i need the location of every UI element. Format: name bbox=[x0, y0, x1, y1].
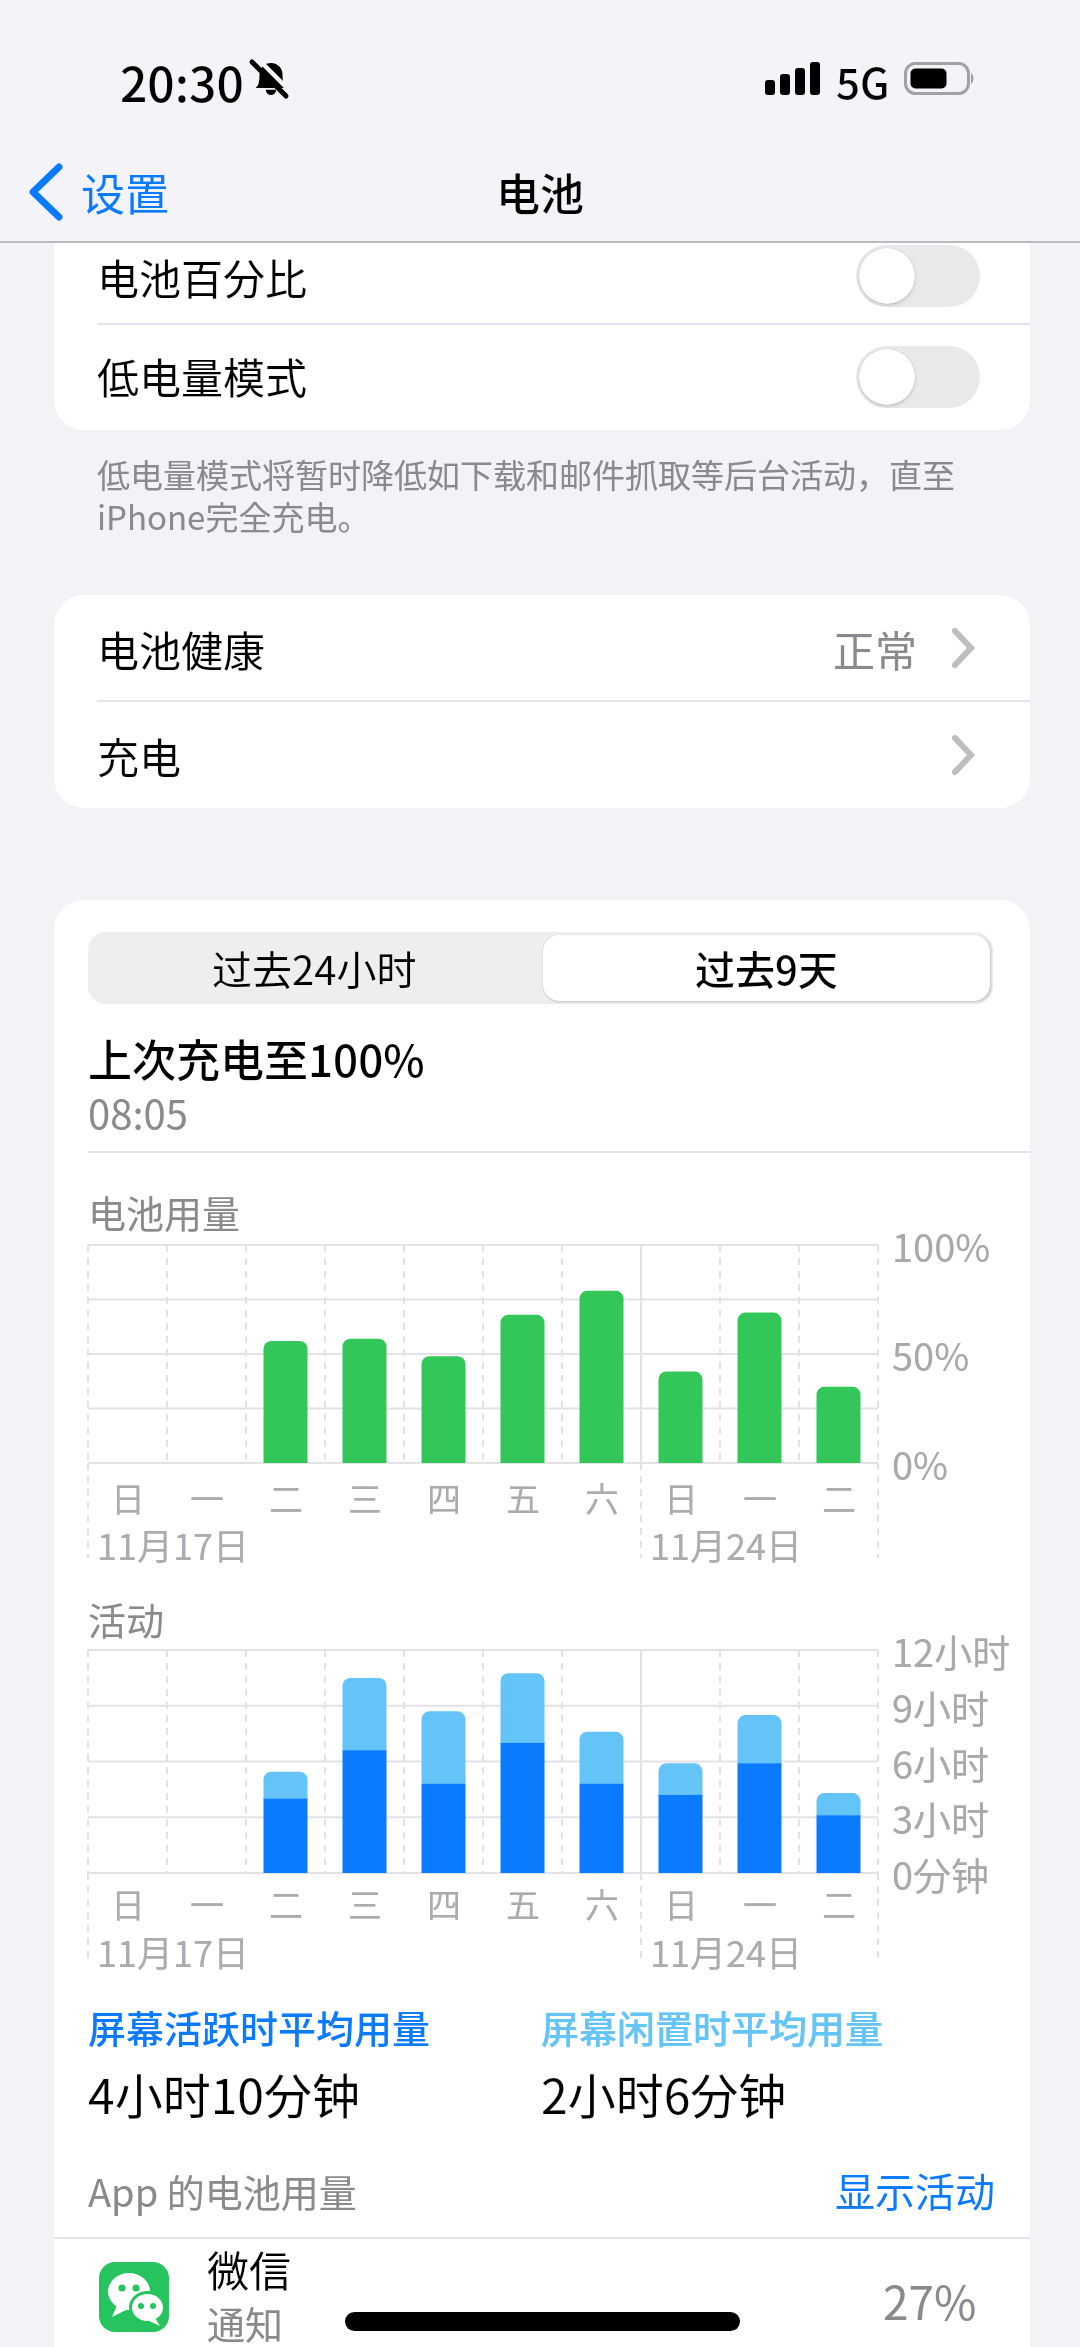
staticText: 电池百分比 bbox=[97, 246, 308, 307]
staticText: App 的电池用量 bbox=[88, 2163, 357, 2218]
button[interactable] bbox=[54, 595, 1030, 700]
staticText: 屏幕闲置时平均用量 bbox=[541, 1999, 884, 2054]
staticText: 电池健康 bbox=[97, 618, 266, 679]
staticText: 11月24日 bbox=[650, 1518, 802, 1570]
staticText: 6小时 bbox=[892, 1735, 990, 1790]
button[interactable] bbox=[28, 160, 278, 224]
staticText: 3小时 bbox=[892, 1790, 990, 1845]
staticText: 上次充电至100% bbox=[88, 1026, 425, 1090]
staticText: 充电 bbox=[97, 725, 182, 786]
staticText: 日 bbox=[111, 1473, 145, 1522]
staticText: 11月17日 bbox=[97, 1925, 249, 1977]
staticText: 四 bbox=[427, 1879, 461, 1928]
staticText: 通知 bbox=[207, 2295, 284, 2347]
staticText: 屏幕活跃时平均用量 bbox=[88, 1999, 431, 2054]
staticText: 0% bbox=[892, 1436, 949, 1491]
staticText: 100% bbox=[892, 1218, 991, 1273]
staticText: 五 bbox=[506, 1473, 540, 1522]
staticText: 2小时6分钟 bbox=[541, 2058, 787, 2128]
button[interactable] bbox=[856, 245, 980, 307]
staticText: iPhone完全充电。 bbox=[97, 492, 371, 540]
staticText: 三 bbox=[348, 1473, 382, 1522]
staticText: 五 bbox=[506, 1879, 540, 1928]
staticText: 一 bbox=[743, 1879, 777, 1928]
staticText: 二 bbox=[269, 1879, 303, 1928]
staticText: 显示活动 bbox=[835, 2161, 995, 2219]
staticText: 一 bbox=[743, 1473, 777, 1522]
button[interactable] bbox=[543, 935, 990, 1001]
staticText: 11月24日 bbox=[650, 1925, 802, 1977]
staticText: 三 bbox=[348, 1879, 382, 1928]
staticText: 27% bbox=[883, 2267, 977, 2334]
staticText: 一 bbox=[190, 1473, 224, 1522]
staticText: 正常 bbox=[833, 618, 918, 679]
staticText: 低电量模式将暂时降低如下载和邮件抓取等后台活动，直至 bbox=[97, 450, 955, 498]
button[interactable]: 显示活动 bbox=[795, 2156, 995, 2224]
staticText: 20:30 bbox=[120, 46, 244, 116]
staticText: 08:05 bbox=[88, 1083, 188, 1141]
staticText: 5G bbox=[836, 50, 890, 111]
staticText: 设置 bbox=[81, 160, 169, 224]
staticText: 电池用量 bbox=[88, 1184, 241, 1239]
staticText: 4小时10分钟 bbox=[88, 2058, 360, 2128]
staticText: 微信 bbox=[207, 2238, 292, 2299]
staticText: 电池 bbox=[496, 160, 584, 224]
staticText: 日 bbox=[664, 1879, 698, 1928]
staticText: 二 bbox=[269, 1473, 303, 1522]
staticText: 二 bbox=[822, 1473, 856, 1522]
button[interactable] bbox=[54, 701, 1030, 808]
staticText: 六 bbox=[585, 1879, 619, 1928]
staticText: 9小时 bbox=[892, 1679, 990, 1734]
staticText: 活动 bbox=[88, 1591, 165, 1646]
staticText: 过去24小时 bbox=[212, 939, 417, 997]
staticText: 50% bbox=[892, 1327, 970, 1382]
staticText: 日 bbox=[664, 1473, 698, 1522]
staticText: 12小时 bbox=[892, 1623, 1011, 1678]
staticText: 六 bbox=[585, 1473, 619, 1522]
button[interactable] bbox=[856, 346, 980, 408]
button[interactable] bbox=[54, 2239, 1030, 2347]
staticText: 一 bbox=[190, 1879, 224, 1928]
staticText: 11月17日 bbox=[97, 1518, 249, 1570]
staticText: 四 bbox=[427, 1473, 461, 1522]
staticText: 二 bbox=[822, 1879, 856, 1928]
staticText: 过去9天 bbox=[695, 939, 838, 997]
staticText: 日 bbox=[111, 1879, 145, 1928]
button[interactable] bbox=[88, 932, 540, 1004]
staticText: 0分钟 bbox=[892, 1846, 990, 1901]
staticText: 低电量模式 bbox=[97, 345, 308, 406]
